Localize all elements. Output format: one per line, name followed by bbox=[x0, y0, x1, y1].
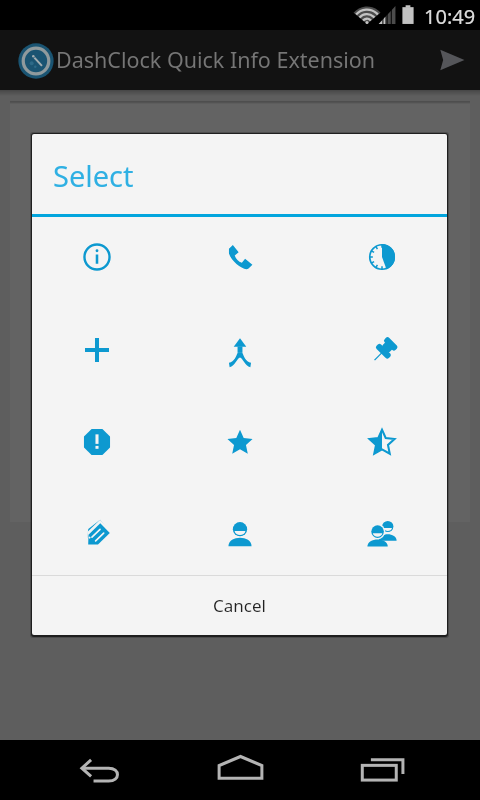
staticText: DashClock Quick Info Extension bbox=[56, 45, 376, 74]
staticText: 10:49 bbox=[424, 3, 476, 30]
button[interactable]: Recents bbox=[342, 742, 422, 796]
button[interactable]: Clock bbox=[311, 217, 447, 303]
button[interactable]: People bbox=[311, 489, 447, 575]
button[interactable]: Cancel bbox=[32, 576, 447, 635]
button[interactable]: Pin bbox=[311, 304, 447, 396]
button[interactable]: Alert bbox=[32, 396, 168, 488]
button[interactable]: Call bbox=[169, 217, 311, 303]
button[interactable]: Star bbox=[169, 396, 311, 488]
button[interactable]: Send bbox=[424, 32, 480, 88]
button[interactable]: Person bbox=[169, 489, 311, 575]
button[interactable]: Merge bbox=[169, 304, 311, 396]
button[interactable]: Home bbox=[200, 742, 280, 792]
button[interactable]: Add bbox=[32, 304, 168, 396]
button[interactable]: Info bbox=[32, 217, 168, 303]
staticText: Cancel bbox=[213, 594, 266, 617]
other: App icon bbox=[18, 43, 54, 79]
staticText: Select bbox=[53, 156, 134, 195]
button[interactable]: Tag bbox=[32, 489, 168, 575]
button[interactable]: Back bbox=[60, 742, 140, 798]
button[interactable]: Half star bbox=[311, 396, 447, 488]
